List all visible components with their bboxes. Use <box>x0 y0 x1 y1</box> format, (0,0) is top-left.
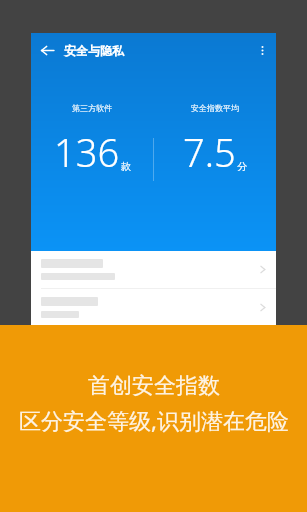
staticText: 款 <box>121 160 131 173</box>
staticText: 136 <box>54 126 120 178</box>
staticText: 首创安全指数 <box>88 372 220 400</box>
button[interactable] <box>31 251 276 288</box>
button[interactable]: Back <box>34 37 60 63</box>
staticText: 分 <box>237 160 247 173</box>
staticText: 安全指数平均 <box>191 103 239 113</box>
button[interactable] <box>31 289 276 326</box>
staticText: 安全与隐私 <box>64 43 124 58</box>
staticText: 区分安全等级,识别潜在危险 <box>19 405 289 435</box>
button[interactable]: More options <box>248 36 276 64</box>
staticText: 第三方软件 <box>72 103 112 113</box>
staticText: 7.5 <box>183 126 236 178</box>
